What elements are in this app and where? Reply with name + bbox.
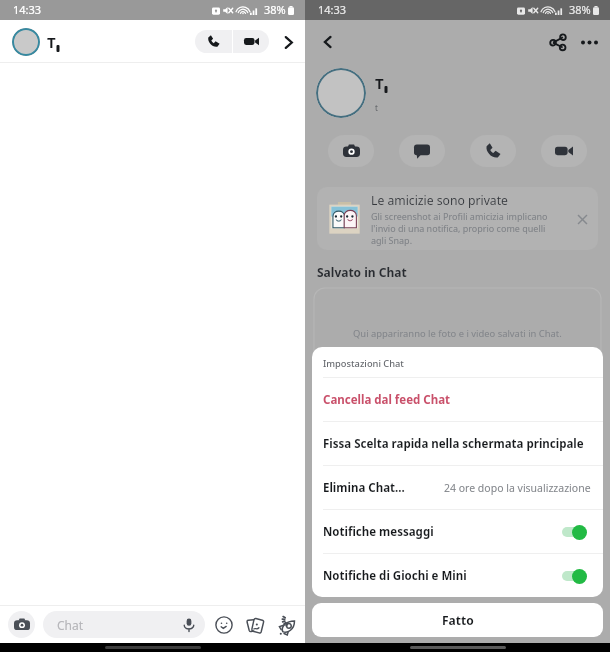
- staticText: Fatto: [442, 612, 474, 628]
- button[interactable]: Games: [273, 612, 299, 638]
- button[interactable]: More options: [576, 29, 602, 55]
- button[interactable]: Cancella dal feed Chat: [312, 378, 603, 421]
- staticText: 38%: [264, 2, 286, 17]
- button[interactable]: Close: [572, 209, 592, 229]
- staticText: 14:33: [318, 2, 347, 17]
- button[interactable]: Next: [276, 30, 300, 54]
- staticText: 38%: [569, 2, 591, 17]
- button[interactable]: Notifiche di Giochi e Mini: [312, 554, 603, 597]
- button[interactable]: Camera: [328, 135, 374, 167]
- button[interactable]: Video call: [541, 135, 587, 167]
- staticText: 14:33: [13, 2, 42, 17]
- staticText: Elimina Chat...: [323, 480, 405, 496]
- staticText: Impostazioni Chat: [323, 357, 404, 370]
- staticText: Chat: [57, 617, 84, 633]
- button[interactable]: Call: [195, 30, 232, 53]
- button[interactable]: Voice message: [181, 617, 197, 633]
- staticText: t: [375, 102, 378, 113]
- button[interactable]: Back: [315, 29, 341, 55]
- button[interactable]: Fatto: [312, 603, 603, 637]
- button[interactable]: Call: [470, 135, 516, 167]
- staticText: Qui appariranno le foto e i video salvat…: [353, 327, 562, 340]
- button[interactable]: Notifiche messaggi: [312, 510, 603, 553]
- staticText: Salvato in Chat: [317, 264, 407, 280]
- button[interactable]: Stickers: [242, 612, 268, 638]
- button[interactable]: Share: [545, 29, 571, 55]
- button[interactable]: Fissa Scelta rapida nella schermata prin…: [312, 422, 603, 465]
- button[interactable]: Toggle: [562, 524, 591, 540]
- button[interactable]: [316, 68, 366, 118]
- staticText: 24 ore dopo la visualizzazione: [444, 481, 591, 495]
- staticText: T: [375, 73, 384, 93]
- button[interactable]: Video call: [233, 30, 269, 53]
- staticText: T: [47, 32, 56, 52]
- staticText: Gli screenshot ai Profili amicizia impli…: [371, 210, 557, 246]
- button[interactable]: Chat: [43, 611, 205, 638]
- button[interactable]: Chat: [399, 135, 445, 167]
- button[interactable]: [12, 28, 40, 56]
- staticText: Le amicizie sono private: [371, 192, 508, 209]
- button[interactable]: Elimina Chat...: [312, 466, 603, 509]
- staticText: Fissa Scelta rapida nella schermata prin…: [323, 436, 584, 452]
- staticText: Cancella dal feed Chat: [323, 392, 451, 408]
- button[interactable]: Toggle: [562, 568, 591, 584]
- staticText: Notifiche di Giochi e Mini: [323, 568, 467, 584]
- button[interactable]: Emoji: [211, 612, 237, 638]
- button[interactable]: Camera: [8, 611, 35, 638]
- button[interactable]: Le amicizie sono private: [317, 187, 598, 250]
- staticText: Notifiche messaggi: [323, 524, 434, 540]
